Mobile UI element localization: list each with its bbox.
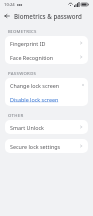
staticText: Change lock screen password [10,82,83,89]
button[interactable]: Face Recognition [5,50,88,64]
button[interactable]: Secure lock settings [5,139,88,153]
button[interactable]: Fingerprint ID [5,36,88,50]
button[interactable]: Change lock screen password [5,78,88,92]
button[interactable]: Back [0,9,14,23]
staticText: Fingerprint ID [10,40,46,47]
staticText: Biometrics & password [14,12,82,20]
staticText: BIOMETRICS [8,28,37,34]
staticText: Smart Unlock [10,124,44,131]
staticText: Secure lock settings [10,143,61,150]
staticText: PASSWORDS [8,70,37,76]
staticText: OTHER [8,112,24,118]
button[interactable]: Smart Unlock [5,120,88,134]
button[interactable]: Disable lock screen password [5,92,88,106]
staticText: Face Recognition [10,54,54,61]
staticText: Disable lock screen password [10,96,83,103]
staticText: 10:24 [4,2,15,8]
